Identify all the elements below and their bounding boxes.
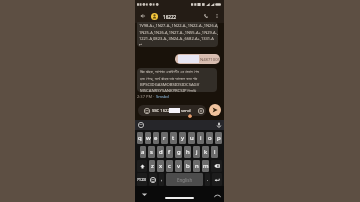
staticText: 2:37 PM · [137,94,156,99]
button[interactable]: Send [209,104,221,116]
button[interactable]: d [157,146,164,158]
staticText: ?123 [137,177,147,183]
staticText: , [161,176,163,183]
button[interactable]: h [184,146,191,158]
staticText: x [159,162,163,170]
staticText: l [214,148,216,156]
staticText: English [177,177,193,183]
button[interactable]: , [159,173,164,186]
staticText: q [138,134,142,142]
button[interactable]: b [184,160,191,172]
button[interactable]: More options [213,12,220,19]
staticText: m [203,162,209,170]
staticText: t [172,134,175,142]
staticText: f [168,148,171,156]
staticText: . [207,176,209,183]
staticText: send [181,108,191,114]
button[interactable]: o [206,132,213,144]
button[interactable]: x [157,160,164,172]
staticText: N4871005 [200,57,220,63]
staticText: e [154,134,158,142]
button[interactable]: . [205,173,210,186]
button[interactable]: f [166,146,173,158]
button[interactable]: e [153,132,159,144]
button[interactable]: p [215,132,222,144]
button[interactable]: c [166,160,173,172]
button[interactable]: t [170,132,177,144]
button[interactable]: g [175,146,182,158]
staticText: i [200,134,202,142]
button[interactable]: a [140,146,146,158]
button[interactable]: Call [202,12,210,20]
button[interactable]: l [211,146,218,158]
button[interactable]: N4871005 [175,54,220,64]
button[interactable]: Recent apps [214,193,221,200]
staticText: w [146,134,151,142]
button[interactable]: Hide keyboard [141,191,148,198]
staticText: k [204,148,208,156]
button[interactable]: n [193,160,200,172]
button[interactable]: j [193,146,200,158]
staticText: h [186,148,190,156]
staticText: y [181,134,185,142]
button[interactable]: w [145,132,151,144]
button[interactable]: Emoji [138,122,144,128]
staticText: n [195,162,199,170]
button[interactable]: SSC 16222 S [138,105,206,116]
button[interactable]: k [202,146,209,158]
button[interactable]: z [149,160,155,172]
button[interactable]: i [197,132,204,144]
button[interactable]: space [166,173,203,186]
staticText: প্রিয় গ্রাহক, আপনার একাউন্টের এর মেয়াদ … [140,69,200,92]
staticText: c [168,162,171,170]
staticText: s [150,148,153,156]
button[interactable]: y [179,132,186,144]
staticText: Smsbd [156,94,169,99]
button[interactable]: v [175,160,182,172]
button[interactable]: u [188,132,195,144]
staticText: v [177,162,181,170]
button[interactable]: enter [212,173,222,186]
button[interactable]: s [148,146,155,158]
button[interactable]: Back [139,12,146,19]
button[interactable]: q [137,132,143,144]
staticText: p [217,134,221,142]
staticText: 1V98-A+,1N27-A-,1N22-A-,1N22-A-,1N26-A, … [139,23,218,47]
staticText: u [190,134,194,142]
button[interactable]: 1V98-A+,1N27-A-,1N22-A-,1N22-A-,1N26-A, … [137,22,218,47]
button[interactable]: del [211,160,222,172]
button[interactable]: ?123 [137,173,147,186]
button[interactable]: প্রিয় গ্রাহক, আপনার একাউন্টের এর মেয়াদ … [137,68,217,92]
staticText: d [159,148,163,156]
staticText: j [196,148,198,156]
staticText: z [151,162,154,170]
staticText: o [208,134,212,142]
button[interactable]: m [202,160,209,172]
button[interactable]: r [161,132,168,144]
staticText: b [186,162,190,170]
staticText: g [177,148,181,156]
staticText: r [163,134,166,142]
staticText: SSC 16222 S [152,108,176,114]
button[interactable]: shift [137,160,147,172]
button[interactable]: Voice input [216,122,222,128]
button[interactable]: emoji [149,173,157,186]
staticText: a [141,148,145,156]
staticText: 16222 [163,14,177,20]
